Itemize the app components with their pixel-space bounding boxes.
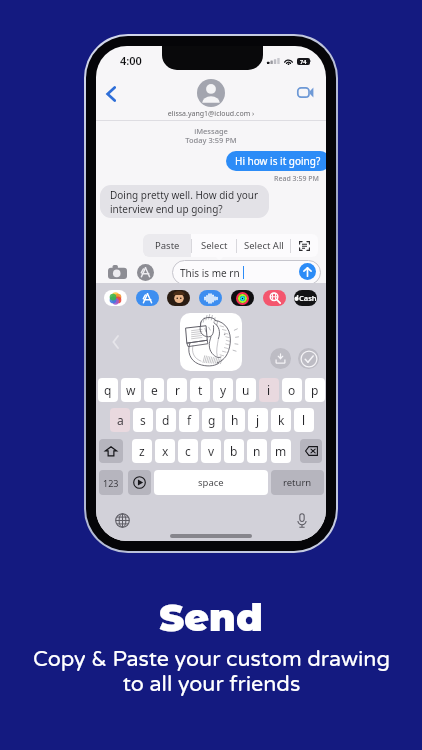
button[interactable]: b <box>224 439 244 463</box>
button[interactable]: App Store <box>133 260 157 284</box>
staticText: a <box>117 412 124 428</box>
staticText: l <box>302 412 306 428</box>
button[interactable]: n <box>247 439 267 463</box>
button[interactable]: Your drawing <box>180 313 242 371</box>
button[interactable]: i <box>259 378 279 402</box>
staticText: i <box>267 382 271 398</box>
button[interactable]: l <box>294 408 314 432</box>
button[interactable]: Paste <box>143 234 191 257</box>
staticText: Read 3:59 PM <box>96 174 319 184</box>
button[interactable]: Return <box>271 470 324 495</box>
staticText: 74 <box>300 58 307 65</box>
button[interactable]: Save drawing <box>270 348 291 369</box>
button[interactable]: Doing pretty well. How did your intervie… <box>110 185 259 218</box>
staticText: Select All <box>244 239 284 252</box>
button[interactable]: y <box>213 378 233 402</box>
button[interactable]: q <box>98 378 118 402</box>
staticText: Paste <box>155 239 180 252</box>
button[interactable]: e <box>144 378 164 402</box>
staticText: return <box>283 476 312 489</box>
button[interactable]: h <box>225 408 245 432</box>
button[interactable]: Change language <box>110 508 134 532</box>
button[interactable]: Backspace <box>300 439 322 463</box>
staticText: x <box>162 443 169 459</box>
button[interactable]: Dictate <box>290 508 314 532</box>
button[interactable]: Fitness <box>231 290 254 306</box>
button[interactable]: Select <box>192 234 236 257</box>
button[interactable]: Hi how is it going? <box>235 151 321 171</box>
button[interactable]: space <box>154 470 268 495</box>
staticText: m <box>275 443 287 459</box>
button[interactable]: t <box>190 378 210 402</box>
button[interactable]: g <box>202 408 222 432</box>
staticText: Select <box>201 239 228 252</box>
button[interactable]: x <box>155 439 175 463</box>
staticText: d <box>162 412 170 428</box>
button[interactable]: Video call <box>293 82 317 102</box>
button[interactable]: d <box>156 408 176 432</box>
staticText: w <box>126 382 136 398</box>
button[interactable] <box>172 260 321 285</box>
button[interactable]: z <box>132 439 152 463</box>
staticText: o <box>288 382 296 398</box>
button[interactable]: Send message <box>299 263 316 280</box>
button[interactable]: Photos <box>104 290 127 306</box>
button[interactable]: p <box>305 378 325 402</box>
staticText: Hi how is it going? <box>235 154 321 168</box>
button[interactable]: Audio <box>199 290 222 306</box>
staticText: g <box>208 412 216 428</box>
staticText: q <box>104 382 112 398</box>
button[interactable]: Confirm <box>298 348 319 369</box>
staticText: r <box>175 382 180 398</box>
button[interactable]: v <box>201 439 221 463</box>
button[interactable]: k <box>271 408 291 432</box>
staticText: space <box>198 476 224 489</box>
staticText: b <box>230 443 238 459</box>
button[interactable]: s <box>133 408 153 432</box>
staticText: u <box>242 382 250 398</box>
staticText: elissa.yang1@icloud.com › <box>96 109 326 119</box>
staticText: t <box>198 382 203 398</box>
button[interactable]: c <box>178 439 198 463</box>
button[interactable]: j <box>248 408 268 432</box>
button[interactable]: Images <box>263 290 286 306</box>
button[interactable]: o <box>282 378 302 402</box>
button[interactable]: Camera <box>105 260 129 284</box>
button[interactable]: Previous sticker <box>107 331 123 353</box>
button[interactable]: r <box>167 378 187 402</box>
staticText: j <box>256 412 260 428</box>
staticText: iMessage Today 3:59 PM <box>96 126 326 146</box>
button[interactable]: Scan text <box>291 234 318 257</box>
button[interactable]: w <box>121 378 141 402</box>
staticText: e <box>151 382 158 398</box>
button[interactable]: Emoji <box>128 470 151 495</box>
staticText: p <box>311 382 319 398</box>
button[interactable]: Apple Cash <box>294 290 317 306</box>
button[interactable]: f <box>179 408 199 432</box>
button[interactable]: a <box>110 408 130 432</box>
staticText: n <box>253 443 261 459</box>
button[interactable]: m <box>271 439 291 463</box>
staticText: Cash <box>299 293 317 303</box>
button[interactable]: u <box>236 378 256 402</box>
button[interactable]: Back <box>102 82 120 105</box>
button[interactable]: Contact avatar <box>197 79 225 107</box>
staticText: 123 <box>103 477 119 489</box>
button[interactable]: Numbers <box>99 470 123 495</box>
button[interactable]: Select All <box>237 234 290 257</box>
button[interactable]: Shift <box>99 439 123 463</box>
button[interactable]: App Store <box>136 290 159 306</box>
staticText: Copy & Paste your custom drawing to all … <box>33 646 390 697</box>
staticText: Doing pretty well. How did your intervie… <box>110 188 259 216</box>
staticText: v <box>208 443 215 459</box>
button[interactable]: Memoji <box>167 290 190 306</box>
staticText: This is me rn <box>180 266 240 280</box>
staticText: h <box>231 412 239 428</box>
staticText: Send <box>159 594 263 640</box>
staticText: c <box>185 443 191 459</box>
staticText: 4:00 <box>120 53 142 68</box>
staticText: k <box>278 412 285 428</box>
staticText: f <box>187 412 192 428</box>
staticText: s <box>140 412 146 428</box>
staticText: z <box>139 443 145 459</box>
